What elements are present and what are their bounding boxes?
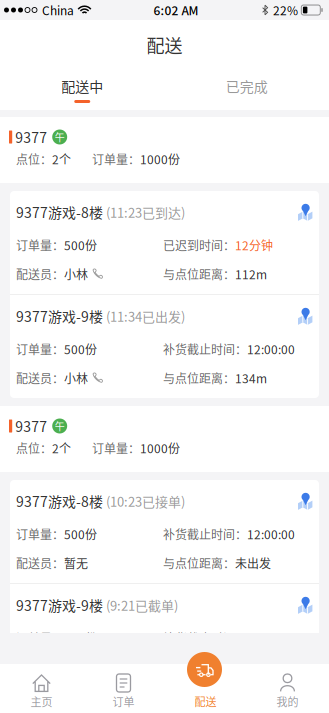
staticText: 12分钟: [235, 236, 273, 254]
staticText: 补货截止时间：: [163, 629, 247, 647]
staticText: 主页: [30, 693, 52, 709]
staticText: 与点位距离：: [163, 658, 235, 676]
staticText: 134m: [235, 369, 267, 387]
staticText: 配送中: [61, 76, 103, 96]
staticText: 2个: [52, 150, 71, 168]
staticText: 9377: [15, 127, 47, 147]
staticText: China: [42, 1, 74, 19]
staticText: 我的: [276, 693, 298, 709]
staticText: 订单量：: [16, 236, 64, 254]
staticText: 已完成: [226, 76, 268, 96]
staticText: (11:23已到达): [106, 203, 185, 221]
button[interactable]: 配送: [164, 664, 246, 713]
staticText: 暂无: [64, 658, 88, 676]
staticText: 500份: [64, 236, 97, 254]
staticText: (11:34已出发): [106, 307, 185, 325]
staticText: 订单量：: [16, 629, 64, 647]
staticText: 与点位距离：: [163, 369, 235, 387]
staticText: 订单量：: [92, 439, 140, 457]
staticText: 9377游戏-8楼: [16, 491, 103, 511]
button[interactable]: 订单: [82, 664, 164, 713]
staticText: 22%: [273, 1, 298, 19]
staticText: 午: [55, 419, 65, 433]
staticText: 2个: [52, 439, 71, 457]
button[interactable]: 配送: [187, 652, 222, 687]
button[interactable]: 已完成: [164, 70, 329, 110]
button[interactable]: 9377游戏-9楼: [10, 295, 319, 398]
staticText: 112m: [235, 265, 267, 283]
staticText: 12:00:00: [247, 525, 295, 543]
staticText: 9377游戏-8楼: [16, 202, 103, 222]
staticText: 点位：: [16, 150, 52, 168]
staticText: 与点位距离：: [163, 554, 235, 572]
staticText: 配送员：: [16, 265, 64, 283]
staticText: 补货截止时间：: [163, 340, 247, 358]
staticText: 小林: [64, 265, 88, 283]
staticText: 9377: [15, 416, 47, 436]
staticText: 未出发: [235, 554, 271, 572]
staticText: 9377游戏-9楼: [16, 306, 103, 326]
staticText: 暂无: [64, 554, 88, 572]
staticText: 1000份: [140, 150, 180, 168]
staticText: 12:00:00: [247, 629, 295, 647]
staticText: (9:21已截单): [106, 596, 178, 614]
staticText: 订单量：: [92, 150, 140, 168]
staticText: 1000份: [140, 439, 180, 457]
staticText: 配送员：: [16, 369, 64, 387]
staticText: 配送员：: [16, 554, 64, 572]
button[interactable]: 配送中: [0, 70, 164, 110]
button[interactable]: 9377游戏-9楼: [10, 584, 319, 687]
staticText: 订单量：: [16, 525, 64, 543]
staticText: 未出发: [235, 658, 271, 676]
staticText: 配送: [146, 32, 182, 58]
staticText: 配送: [194, 693, 216, 709]
staticText: 午: [55, 130, 65, 144]
staticText: 12:00:00: [247, 340, 295, 358]
staticText: (10:23已接单): [106, 492, 185, 510]
staticText: 500份: [64, 525, 97, 543]
staticText: 点位：: [16, 439, 52, 457]
staticText: 与点位距离：: [163, 265, 235, 283]
staticText: 补货截止时间：: [163, 525, 247, 543]
button[interactable]: 我的: [246, 664, 328, 713]
staticText: 已迟到时间：: [163, 236, 235, 254]
button[interactable]: 9377游戏-8楼: [10, 191, 319, 294]
staticText: 500份: [64, 340, 97, 358]
staticText: 6:02 AM: [153, 1, 198, 19]
staticText: 小林: [64, 369, 88, 387]
staticText: 500份: [64, 629, 97, 647]
staticText: 9377游戏-9楼: [16, 595, 103, 615]
staticText: 订单量：: [16, 340, 64, 358]
button[interactable]: 主页: [0, 664, 82, 713]
button[interactable]: 9377游戏-8楼: [10, 480, 319, 583]
staticText: 订单: [112, 693, 134, 709]
staticText: 配送员：: [16, 658, 64, 676]
